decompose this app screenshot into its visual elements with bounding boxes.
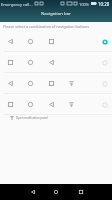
button[interactable]: Back [25,184,41,200]
staticText: Open notification panel [16,116,48,120]
button[interactable] [0,52,112,73]
button[interactable]: Home [48,184,64,200]
staticText: 10:28 [98,1,110,7]
button[interactable]: Recents [73,184,89,200]
staticText: Please select a combination of navigatio… [3,24,90,29]
button[interactable] [0,31,112,52]
staticText: Navigation bar [41,10,71,16]
staticText: 100% [79,2,90,7]
button[interactable] [0,94,112,115]
button[interactable] [0,73,112,94]
staticText: Emergency call... [1,2,33,7]
